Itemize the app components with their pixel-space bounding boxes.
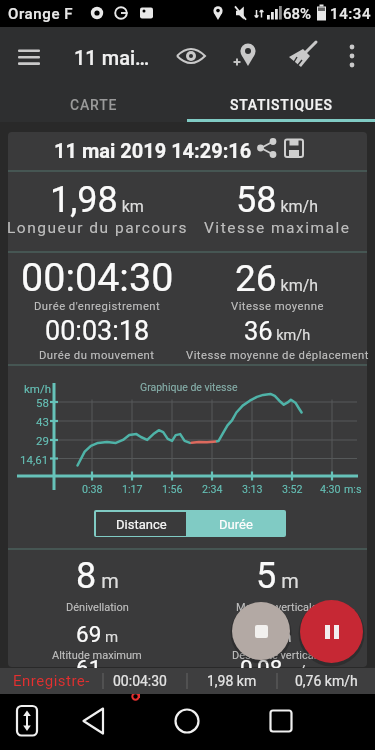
button[interactable]	[232, 602, 290, 660]
staticText: 0:38	[82, 483, 103, 496]
button[interactable]	[173, 38, 209, 74]
button[interactable]: Distance	[96, 512, 186, 536]
staticText: 11 mai 2019 14:29:16	[54, 139, 252, 162]
staticText: Orange F	[8, 5, 74, 23]
staticText: 1,98 km	[207, 673, 257, 689]
button[interactable]: STATISTIQUES	[188, 89, 375, 121]
staticText: CARTE	[70, 97, 118, 113]
staticText: STATISTIQUES	[230, 97, 333, 113]
staticText: 0,08 m/s	[240, 655, 314, 681]
button[interactable]	[263, 700, 299, 742]
staticText: 2:34	[202, 483, 223, 496]
staticText: 14,61	[20, 453, 49, 466]
button[interactable]	[229, 38, 265, 74]
staticText: Enregistre-	[13, 672, 90, 690]
staticText: Durée d'enregistrement	[34, 300, 161, 313]
staticText: 26 km/h	[235, 257, 319, 300]
staticText: 8 m	[76, 555, 119, 597]
staticText: 1:56	[162, 483, 183, 496]
staticText: 00:04:30	[113, 673, 167, 689]
staticText: Graphique de vitesse	[140, 381, 238, 393]
staticText: 3:52	[282, 483, 303, 496]
staticText: Durée	[219, 517, 253, 532]
staticText: 61 m	[76, 655, 119, 681]
staticText: Dénivellation	[66, 601, 129, 614]
staticText: 69 m	[76, 621, 119, 647]
staticText: Montée verticale	[236, 601, 318, 614]
staticText: Durée du mouvement	[39, 349, 155, 362]
button[interactable]	[282, 134, 312, 164]
staticText: 14:34	[330, 5, 372, 23]
staticText: Vitesse moyenne	[231, 300, 324, 313]
staticText: 5 m	[256, 555, 299, 597]
staticText: m:s	[344, 483, 362, 496]
button[interactable]: CARTE	[0, 89, 187, 121]
staticText: 1,98 km	[50, 179, 144, 221]
staticText: 29	[36, 434, 49, 447]
staticText: km/h	[24, 382, 51, 395]
staticText: Distance	[116, 517, 167, 532]
staticText: 00:04:30	[21, 254, 174, 300]
staticText: 1:17	[122, 483, 143, 496]
staticText: 58 km/h	[236, 179, 318, 221]
button[interactable]	[8, 40, 50, 76]
staticText: Vitesse maximale	[204, 219, 351, 237]
staticText: Descente verticale	[232, 649, 323, 662]
staticText: 0,76 km/h	[295, 673, 358, 689]
button[interactable]	[75, 700, 111, 742]
staticText: 3:13	[242, 483, 263, 496]
staticText: Vitesse moyenne de déplacement	[186, 349, 369, 362]
staticText: 4 m	[262, 621, 292, 647]
button[interactable]	[338, 38, 366, 74]
staticText: 58	[36, 396, 49, 409]
button[interactable]	[169, 700, 205, 742]
button[interactable]: Durée	[186, 512, 285, 536]
staticText: 4:30	[320, 483, 341, 496]
button[interactable]	[10, 700, 46, 742]
button[interactable]	[252, 134, 282, 164]
staticText: 68%	[283, 5, 312, 23]
button[interactable]	[300, 600, 363, 663]
staticText: 36 km/h	[244, 316, 311, 346]
staticText: 00:03:18	[45, 315, 150, 347]
staticText: Longueur du parcours	[7, 219, 188, 237]
staticText: 43	[36, 415, 49, 428]
staticText: 11 mai…	[74, 46, 150, 69]
button[interactable]	[288, 38, 324, 74]
staticText: Altitude maximum	[52, 649, 142, 662]
